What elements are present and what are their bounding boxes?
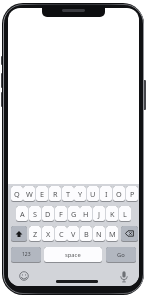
button[interactable]: X [42,226,54,242]
button[interactable]: F [55,206,67,222]
button[interactable] [11,226,27,242]
staticText: U [90,189,96,199]
staticText: I [105,189,108,199]
button[interactable]: J [93,206,105,222]
button[interactable]: S [29,206,41,222]
staticText: H [83,209,89,219]
button[interactable]: D [42,206,54,222]
button[interactable]: Go [106,247,136,263]
staticText: R [53,189,58,199]
button[interactable]: A [16,206,28,222]
staticText: Go [117,251,125,259]
button[interactable]: 123 [11,247,41,263]
button[interactable]: I [100,186,112,202]
staticText: V [71,229,76,239]
staticText: G [71,209,77,219]
button[interactable]: L [119,206,131,222]
staticText: O [116,189,122,199]
staticText: L [123,209,127,219]
button[interactable]: B [80,226,92,242]
staticText: C [59,229,64,239]
button[interactable]: M [106,226,118,242]
button[interactable]: Z [29,226,41,242]
button[interactable]: V [67,226,79,242]
button[interactable]: space [44,247,102,263]
staticText: X [46,229,51,239]
staticText: E [40,189,45,199]
button[interactable]: K [106,206,118,222]
button[interactable]: O [113,186,125,202]
button[interactable]: G [68,206,80,222]
staticText: Y [78,189,83,199]
staticText: M [109,229,116,239]
staticText: 123 [22,251,31,258]
button[interactable] [121,226,138,242]
button[interactable]: Q [11,186,23,202]
button[interactable]: P [126,186,138,202]
staticText: P [130,189,135,199]
staticText: N [96,229,102,239]
staticText: T [66,189,71,199]
staticText: Z [33,229,38,239]
staticText: J [98,209,100,219]
staticText: space [65,251,81,259]
button[interactable]: C [55,226,67,242]
staticText: B [84,229,89,239]
button[interactable]: R [49,186,61,202]
staticText: S [33,209,38,219]
staticText: F [59,209,63,219]
staticText: K [110,209,115,219]
button[interactable]: W [23,186,35,202]
button[interactable]: Y [74,186,86,202]
staticText: W [26,189,33,199]
staticText: Q [14,189,20,199]
button[interactable]: E [36,186,48,202]
button[interactable]: T [62,186,74,202]
button[interactable]: U [87,186,99,202]
button[interactable]: N [93,226,105,242]
staticText: A [20,209,25,219]
staticText: D [45,209,51,219]
button[interactable]: H [80,206,92,222]
